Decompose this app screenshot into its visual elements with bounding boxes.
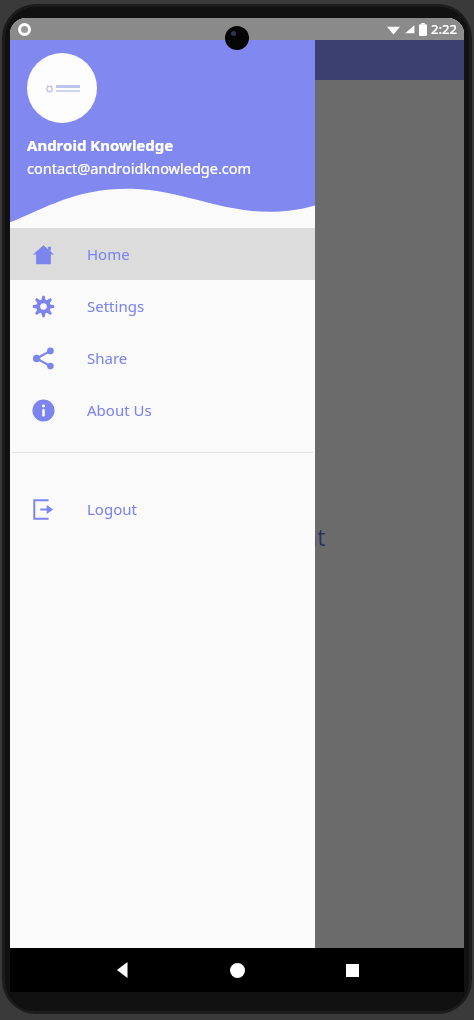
button[interactable]: Home bbox=[10, 228, 315, 280]
button[interactable]: Home bbox=[215, 948, 259, 992]
staticText: Settings bbox=[87, 296, 145, 316]
staticText: Home bbox=[87, 244, 130, 264]
button[interactable]: Back bbox=[101, 948, 145, 992]
button[interactable]: Logout bbox=[10, 483, 315, 535]
staticText: Share bbox=[87, 348, 128, 368]
staticText: contact@androidknowledge.com bbox=[27, 158, 252, 178]
button[interactable]: Share bbox=[10, 332, 315, 384]
staticText: Logout bbox=[87, 499, 137, 519]
button[interactable]: Settings bbox=[10, 280, 315, 332]
button[interactable]: About Us bbox=[10, 384, 315, 436]
button[interactable]: Recents bbox=[330, 948, 374, 992]
staticText: About Us bbox=[87, 400, 152, 420]
staticText: Home Fragment bbox=[149, 521, 326, 552]
staticText: Android Knowledge bbox=[27, 135, 174, 155]
staticText: 2:22 bbox=[431, 20, 457, 38]
